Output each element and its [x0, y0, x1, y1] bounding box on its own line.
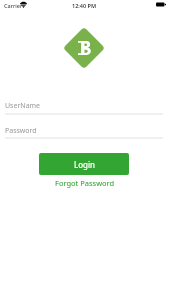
button[interactable]: Password	[0, 123, 169, 139]
staticText: Carrier	[4, 2, 23, 9]
staticText: UserName	[5, 101, 41, 111]
staticText: Login	[74, 159, 95, 170]
other: Battery full	[156, 2, 166, 7]
other: Wi-Fi signal	[20, 2, 27, 8]
button[interactable]: Login	[39, 153, 129, 175]
button[interactable]: UserName	[0, 98, 169, 114]
staticText: Forgot Password	[55, 178, 115, 188]
staticText: 12:40 PM	[72, 2, 97, 9]
staticText: Password	[5, 126, 37, 136]
button[interactable]: Forgot Password	[0, 177, 169, 189]
